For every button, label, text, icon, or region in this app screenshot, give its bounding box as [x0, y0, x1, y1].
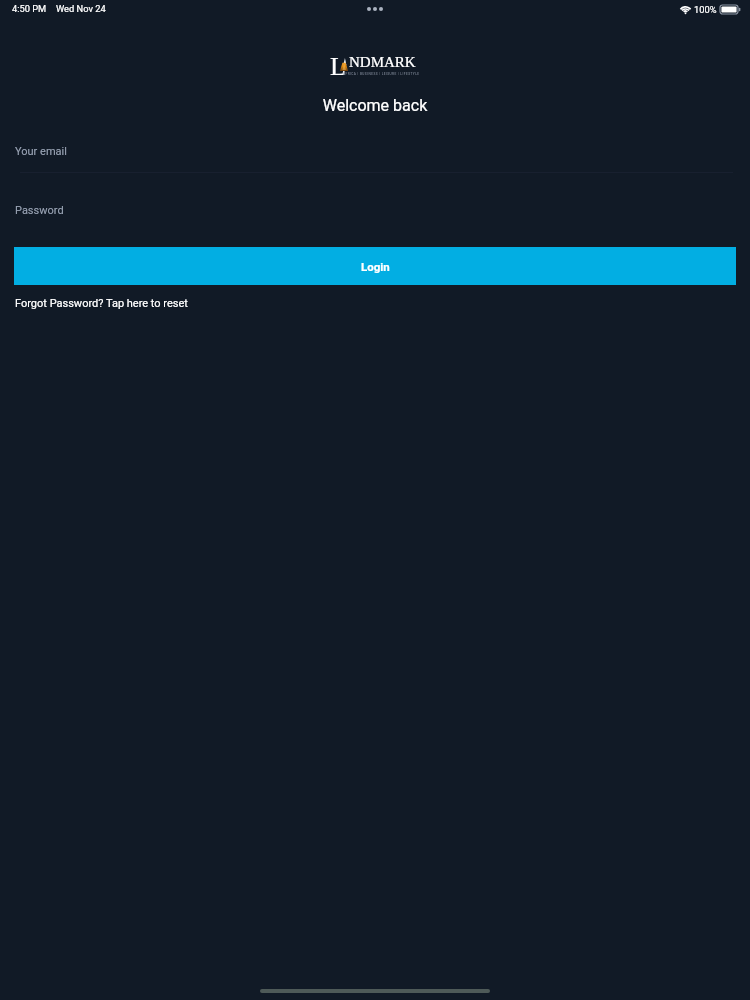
- staticText: AFRICA | BUSINESS | LEISURE | LIFESTYLE: [343, 72, 420, 76]
- staticText: L: [330, 52, 346, 81]
- staticText: Password: [15, 204, 64, 217]
- staticText: Login: [361, 260, 390, 273]
- staticText: Welcome back: [0, 96, 750, 115]
- staticText: Forgot Password? Tap here to reset: [15, 297, 188, 310]
- staticText: NDMARK: [349, 54, 416, 71]
- staticText: Wed Nov 24: [56, 3, 106, 14]
- staticText: Your email: [15, 145, 67, 158]
- staticText: 100%: [694, 4, 717, 15]
- staticText: 4:50 PM: [12, 3, 47, 14]
- button[interactable]: Password: [0, 201, 750, 220]
- button[interactable]: Forgot Password? Tap here to reset: [0, 296, 750, 314]
- button[interactable]: Login: [14, 247, 736, 285]
- button[interactable]: Your email: [0, 142, 750, 161]
